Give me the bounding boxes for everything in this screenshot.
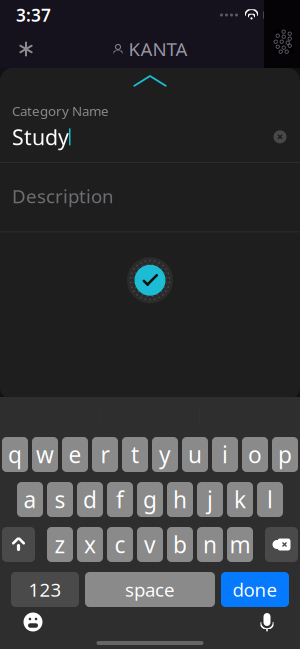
staticText: d bbox=[83, 484, 97, 514]
staticText: c bbox=[114, 529, 125, 559]
button[interactable]: t bbox=[122, 437, 148, 472]
button[interactable]: j bbox=[197, 482, 223, 517]
button[interactable]: space bbox=[85, 572, 215, 607]
staticText: e bbox=[68, 439, 81, 469]
button[interactable]: o bbox=[242, 437, 268, 472]
staticText: w bbox=[36, 439, 54, 469]
staticText: Study bbox=[12, 123, 69, 151]
staticText: g bbox=[143, 484, 157, 514]
button[interactable]: Confirm bbox=[124, 254, 176, 306]
staticText: h bbox=[173, 484, 187, 514]
button[interactable]: q bbox=[2, 437, 28, 472]
staticText: n bbox=[203, 529, 217, 559]
button[interactable]: 123 bbox=[11, 572, 79, 607]
button[interactable]: Clear text bbox=[272, 129, 288, 145]
button[interactable]: p bbox=[272, 437, 298, 472]
button[interactable]: g bbox=[137, 482, 163, 517]
button[interactable]: x bbox=[77, 527, 103, 562]
button[interactable]: Delete bbox=[265, 527, 298, 562]
button[interactable]: l bbox=[257, 482, 283, 517]
staticText: r bbox=[100, 439, 109, 469]
button[interactable]: c bbox=[107, 527, 133, 562]
button[interactable]: s bbox=[47, 482, 73, 517]
button[interactable]: a bbox=[17, 482, 43, 517]
button[interactable]: y bbox=[152, 437, 178, 472]
staticText: x bbox=[84, 529, 96, 559]
button[interactable]: k bbox=[227, 482, 253, 517]
button[interactable]: Collapse bbox=[0, 66, 300, 96]
staticText: space bbox=[125, 577, 175, 602]
staticText: z bbox=[54, 529, 65, 559]
staticText: s bbox=[54, 484, 65, 514]
button[interactable]: f bbox=[107, 482, 133, 517]
staticText: KANTA bbox=[128, 37, 187, 61]
staticText: Category Name bbox=[12, 102, 109, 120]
button[interactable]: done bbox=[221, 572, 289, 607]
staticText: j bbox=[207, 484, 213, 514]
staticText: t bbox=[131, 439, 139, 469]
button[interactable]: Emoji bbox=[16, 607, 50, 637]
button[interactable]: z bbox=[47, 527, 73, 562]
button[interactable]: h bbox=[167, 482, 193, 517]
button[interactable]: i bbox=[212, 437, 238, 472]
staticText: b bbox=[173, 529, 187, 559]
button[interactable]: Menu bbox=[254, 30, 294, 68]
staticText: o bbox=[248, 439, 262, 469]
staticText: a bbox=[23, 484, 36, 514]
button[interactable]: v bbox=[137, 527, 163, 562]
staticText: q bbox=[8, 439, 22, 469]
button[interactable]: Sparkle bbox=[6, 30, 46, 68]
staticText: u bbox=[188, 439, 202, 469]
staticText: i bbox=[222, 439, 228, 469]
button[interactable]: r bbox=[92, 437, 118, 472]
staticText: p bbox=[278, 439, 292, 469]
button[interactable]: e bbox=[62, 437, 88, 472]
button[interactable]: u bbox=[182, 437, 208, 472]
staticText: 3:37 bbox=[16, 3, 51, 26]
staticText: 123 bbox=[28, 577, 61, 602]
button[interactable]: d bbox=[77, 482, 103, 517]
staticText: Description bbox=[12, 184, 114, 208]
button[interactable]: b bbox=[167, 527, 193, 562]
staticText: done bbox=[232, 577, 277, 602]
button[interactable]: n bbox=[197, 527, 223, 562]
button[interactable]: m bbox=[227, 527, 253, 562]
staticText: k bbox=[234, 484, 246, 514]
button[interactable]: w bbox=[32, 437, 58, 472]
staticText: y bbox=[159, 439, 171, 469]
button[interactable]: Shift bbox=[2, 527, 35, 562]
staticText: f bbox=[116, 484, 124, 514]
staticText: m bbox=[229, 529, 250, 559]
staticText: v bbox=[144, 529, 156, 559]
button[interactable]: Dictate bbox=[250, 607, 284, 637]
staticText: l bbox=[267, 484, 273, 514]
